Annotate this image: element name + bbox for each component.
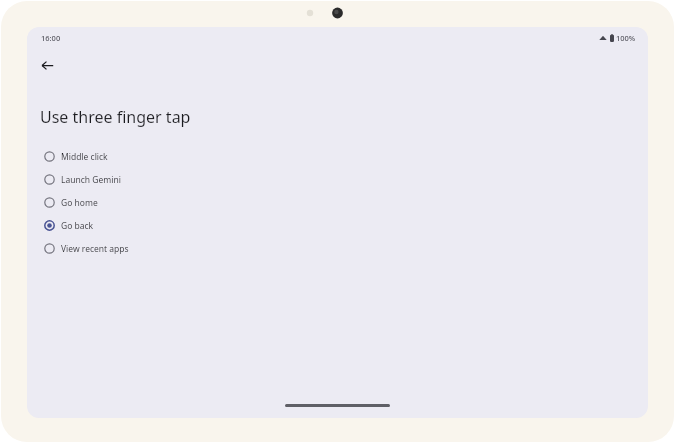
staticText: Use three finger tap: [40, 106, 191, 128]
staticText: 100%: [616, 33, 636, 43]
button[interactable]: Back: [33, 51, 61, 79]
staticText: View recent apps: [61, 243, 129, 255]
button[interactable]: Go back: [27, 214, 648, 237]
staticText: 16:00: [41, 33, 61, 43]
staticText: Go back: [61, 220, 94, 232]
button[interactable]: Go home: [27, 191, 648, 214]
button[interactable]: Launch Gemini: [27, 168, 648, 191]
button[interactable]: View recent apps: [27, 237, 648, 260]
staticText: Go home: [61, 197, 98, 209]
staticText: Launch Gemini: [61, 174, 121, 186]
button[interactable]: Middle click: [27, 145, 648, 168]
staticText: Middle click: [61, 151, 108, 163]
